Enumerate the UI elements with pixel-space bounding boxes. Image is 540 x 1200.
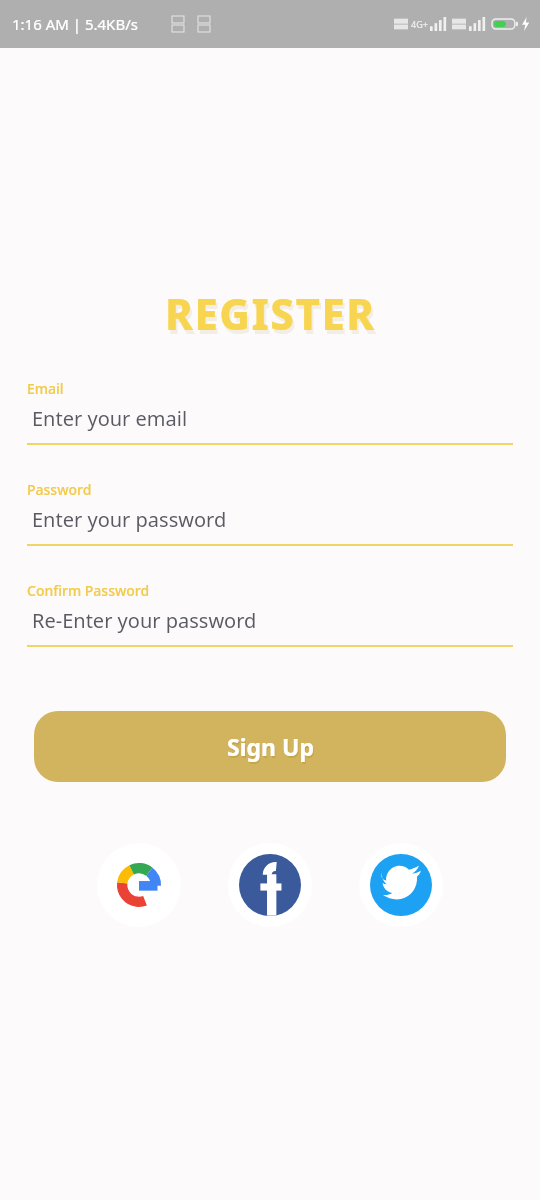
staticText: Sign Up [227,731,314,762]
staticText: Re-Enter your password [32,607,257,634]
staticText: 4G+ [411,18,428,30]
staticText: Email [27,379,64,398]
button[interactable]: Sign up with Twitter [359,843,443,927]
button[interactable]: Sign up with Google [97,843,181,927]
staticText: Sign Up [228,733,315,764]
button[interactable]: Confirm Password [27,581,513,647]
staticText: Enter your email [32,405,188,432]
staticText: Password [27,480,92,499]
button[interactable]: Password [27,480,513,546]
button[interactable]: Sign Up [34,711,506,782]
staticText: 1:16 AM | 5.4KB/s [12,14,138,34]
staticText: REGISTER [165,285,376,342]
staticText: Enter your password [32,506,227,533]
button[interactable]: Sign up with Facebook [228,843,312,927]
staticText: Confirm Password [27,581,150,600]
button[interactable]: Email [27,379,513,445]
staticText: REGISTER [167,289,378,346]
